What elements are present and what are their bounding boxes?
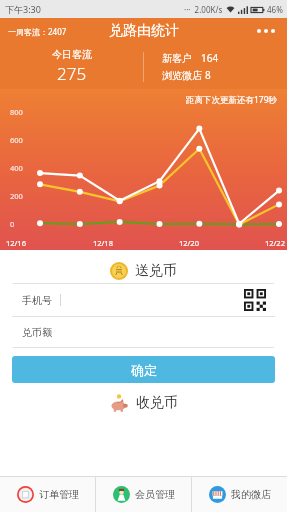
staticText: 12/22 <box>265 238 285 248</box>
button[interactable]: 我的微店 <box>192 477 287 512</box>
staticText: 一周客流：2407 <box>8 26 67 37</box>
staticText: 兑路由统计 <box>109 22 179 40</box>
staticText: 兑币额 <box>22 326 52 339</box>
staticText: 收兑币 <box>136 394 178 412</box>
staticText: ··· 2.00K/s <box>184 4 223 15</box>
staticText: 新客户 <box>162 52 192 65</box>
button[interactable]: 会员管理 <box>96 477 191 512</box>
staticText: 今日客流 <box>52 48 92 61</box>
staticText: 600 <box>10 135 23 145</box>
staticText: 164 <box>201 51 219 65</box>
staticText: 距离下次更新还有179秒 <box>186 94 278 106</box>
staticText: 8 <box>205 68 211 82</box>
button[interactable]: 收兑币 <box>0 390 287 416</box>
staticText: 400 <box>10 163 23 173</box>
button[interactable]: 送兑币 <box>0 259 287 283</box>
staticText: 46% <box>267 4 283 15</box>
staticText: 确定 <box>131 362 157 378</box>
button[interactable]: 订单管理 <box>0 477 95 512</box>
staticText: 会员管理 <box>135 488 175 501</box>
staticText: 275 <box>57 62 87 85</box>
staticText: 0 <box>10 219 15 229</box>
button[interactable]: 兑币额 <box>12 317 275 347</box>
staticText: 手机号 <box>22 294 52 307</box>
staticText: 12/18 <box>93 238 113 248</box>
button[interactable]: 确定 <box>12 356 275 383</box>
staticText: 下午3:30 <box>5 3 41 15</box>
staticText: 12/20 <box>179 238 199 248</box>
staticText: 送兑币 <box>135 262 177 280</box>
staticText: 我的微店 <box>231 488 271 501</box>
staticText: 订单管理 <box>39 488 79 501</box>
staticText: 12/16 <box>6 238 26 248</box>
staticText: 800 <box>10 107 23 117</box>
button[interactable]: More options <box>253 25 279 37</box>
staticText: 200 <box>10 191 23 201</box>
staticText: 浏览微店 <box>162 69 202 82</box>
button[interactable]: Scan QR code <box>244 289 266 311</box>
button[interactable]: 手机号 <box>12 284 275 316</box>
